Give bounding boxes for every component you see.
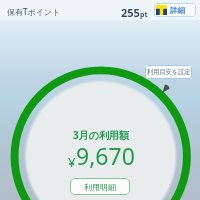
button[interactable]: 利用明細 (70, 178, 130, 195)
staticText: 利用目安を設定 (147, 68, 191, 76)
staticText: 詳細 (170, 6, 185, 15)
button[interactable]: 詳細 (154, 3, 196, 17)
staticText: 255 (121, 5, 140, 20)
staticText: 利用明細 (84, 182, 116, 192)
staticText: ¥ (68, 153, 76, 171)
staticText: 9,670 (76, 140, 135, 171)
button[interactable]: 利用目安を設定 (145, 65, 192, 79)
staticText: pt (140, 10, 148, 20)
staticText: 保有Tポイント (7, 6, 61, 17)
staticText: 3月の利用額 (73, 128, 129, 142)
